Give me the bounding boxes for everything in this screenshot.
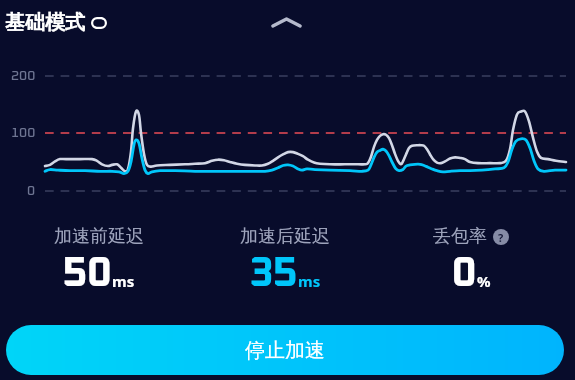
staticText: ms	[298, 271, 321, 291]
staticText: ?	[498, 230, 504, 245]
staticText: 100	[11, 126, 36, 140]
button[interactable]: 基础模式	[5, 10, 107, 35]
button[interactable]: Collapse	[263, 10, 310, 34]
button[interactable]: 停止加速	[6, 325, 564, 375]
staticText: 0	[452, 253, 477, 295]
staticText: 停止加速	[245, 338, 325, 363]
button[interactable]: 加速后延迟	[192, 225, 378, 295]
staticText: 丢包率	[433, 225, 487, 248]
staticText: %	[477, 271, 491, 291]
staticText: 加速后延迟	[240, 225, 330, 248]
staticText: 加速前延迟	[54, 225, 144, 248]
staticText: 50	[63, 253, 112, 295]
button[interactable]: 丢包率	[378, 225, 564, 295]
staticText: 基础模式	[5, 10, 85, 35]
staticText: 0	[27, 184, 36, 198]
staticText: 200	[11, 69, 36, 83]
button[interactable]: 加速前延迟	[6, 225, 192, 295]
staticText: 35	[249, 253, 298, 295]
staticText: ms	[112, 271, 135, 291]
